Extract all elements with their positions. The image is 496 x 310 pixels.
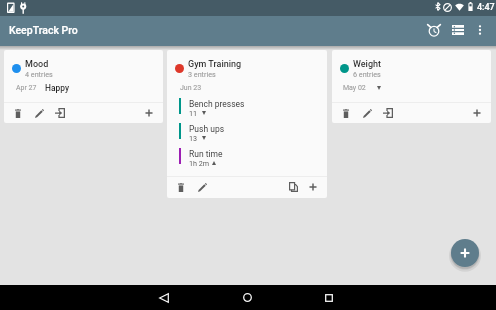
button[interactable]: Add xyxy=(467,103,487,123)
button[interactable]: Run time xyxy=(167,148,327,173)
staticText: Bench presses xyxy=(189,99,245,109)
button[interactable]: Add xyxy=(139,103,159,123)
button[interactable]: Delete xyxy=(8,103,28,123)
staticText: Jun 23 xyxy=(180,84,202,92)
staticText: Gym Training xyxy=(188,59,242,70)
button[interactable]: Edit xyxy=(357,103,377,123)
button[interactable]: Home xyxy=(231,285,263,310)
button[interactable]: Recents xyxy=(313,285,345,310)
button[interactable]: Duplicate xyxy=(283,177,303,197)
button[interactable]: Reminders xyxy=(422,18,446,42)
staticText: 13 xyxy=(189,134,198,142)
staticText: Apr 27 xyxy=(16,84,37,92)
button[interactable]: List view xyxy=(446,18,470,42)
button[interactable]: Edit xyxy=(192,177,212,197)
staticText: Happy xyxy=(45,83,69,93)
button[interactable]: Add entry xyxy=(50,103,70,123)
button[interactable]: Bench presses xyxy=(167,98,327,123)
staticText: 3 entries xyxy=(188,70,216,78)
staticText: Weight xyxy=(353,59,382,70)
staticText: Run time xyxy=(189,149,223,159)
button[interactable]: Delete xyxy=(336,103,356,123)
button[interactable]: Add entry xyxy=(378,103,398,123)
button[interactable]: Push ups xyxy=(167,123,327,148)
staticText: KeepTrack Pro xyxy=(9,24,78,36)
staticText: 6 entries xyxy=(353,70,381,78)
staticText: 4 entries xyxy=(25,70,53,78)
button[interactable]: Add graph xyxy=(451,239,479,267)
staticText: Mood xyxy=(25,59,49,70)
staticText: 4:47 xyxy=(477,2,495,13)
staticText: May 02 xyxy=(343,84,366,92)
staticText: 11 xyxy=(189,109,198,117)
button[interactable]: More options xyxy=(468,18,492,42)
button[interactable]: Add xyxy=(303,177,323,197)
staticText: Push ups xyxy=(189,124,225,134)
button[interactable]: Edit xyxy=(29,103,49,123)
button[interactable]: Back xyxy=(148,285,180,310)
staticText: 1h 2m xyxy=(189,159,210,167)
button[interactable]: Delete xyxy=(171,177,191,197)
